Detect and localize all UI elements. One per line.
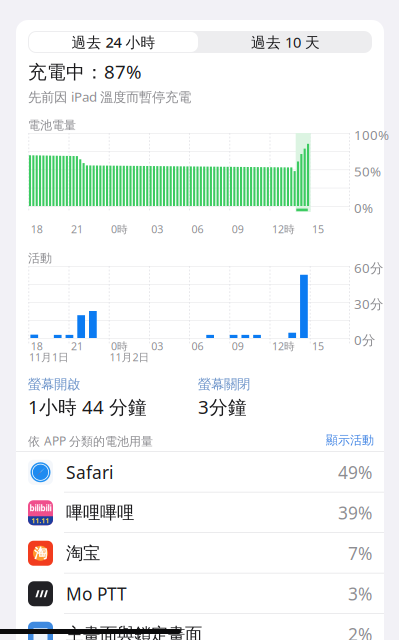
button[interactable]: bilibili — [16, 492, 384, 533]
button[interactable]: 過去 10 天 — [200, 31, 371, 53]
staticText: 0時 — [111, 339, 128, 353]
staticText: 39% — [338, 501, 372, 524]
button[interactable]: 淘 — [16, 533, 384, 573]
button[interactable]: 過去 24 小時 — [28, 31, 199, 53]
staticText: 淘宝 — [66, 543, 100, 564]
staticText: 09 — [232, 339, 244, 353]
staticText: 螢幕關閉 — [198, 376, 250, 392]
staticText: 0時 — [111, 222, 128, 236]
staticText: 7% — [348, 542, 372, 565]
staticText: 15 — [312, 222, 324, 236]
staticText: 30分 — [354, 295, 383, 313]
staticText: 依 APP 分類的電池用量 — [28, 433, 153, 449]
staticText: 50% — [354, 162, 381, 180]
staticText: 18 — [31, 339, 43, 353]
staticText: 3% — [348, 582, 372, 605]
staticText: 過去 24 小時 — [71, 32, 155, 52]
staticText: 49% — [338, 461, 372, 484]
staticText: 15 — [312, 339, 324, 353]
staticText: Mo PTT — [66, 582, 127, 605]
staticText: 11月1日 — [29, 350, 69, 364]
staticText: 1小時 44 分鐘 — [28, 394, 147, 419]
staticText: 100% — [354, 126, 389, 144]
staticText: 充電中：87% — [28, 59, 142, 84]
staticText: 嗶哩嗶哩 — [66, 502, 134, 523]
staticText: 21 — [71, 222, 83, 236]
staticText: 06 — [191, 222, 203, 236]
staticText: 18 — [31, 222, 43, 236]
staticText: 0% — [354, 199, 373, 217]
button[interactable]: 顯示活動 — [326, 433, 374, 448]
staticText: 顯示活動 — [326, 433, 374, 448]
button[interactable]: Mo PTT — [16, 573, 384, 614]
staticText: 螢幕開啟 — [28, 376, 80, 392]
staticText: 60分 — [354, 259, 383, 277]
staticText: Safari — [66, 461, 113, 484]
staticText: 主畫面與鎖定畫面 — [66, 624, 202, 640]
staticText: 過去 10 天 — [251, 32, 320, 52]
button[interactable]: 主畫面與鎖定畫面 — [16, 614, 384, 640]
staticText: 09 — [232, 222, 244, 236]
staticText: 活動 — [28, 251, 52, 266]
staticText: 0分 — [354, 331, 375, 349]
staticText: 03 — [151, 222, 163, 236]
staticText: 11月2日 — [109, 350, 149, 364]
staticText: 3分鐘 — [198, 394, 247, 419]
staticText: 淘 — [34, 545, 47, 561]
staticText: 21 — [71, 339, 83, 353]
staticText: bilibili — [29, 503, 51, 513]
staticText: 06 — [191, 339, 203, 353]
staticText: 先前因 iPad 溫度而暫停充電 — [28, 88, 191, 105]
staticText: 11.11 — [31, 516, 49, 525]
staticText: 12時 — [272, 222, 295, 236]
staticText: 12時 — [272, 339, 295, 353]
button[interactable]: Safari — [16, 452, 384, 492]
staticText: 2% — [348, 623, 372, 640]
staticText: 電池電量 — [28, 118, 76, 133]
staticText: 03 — [151, 339, 163, 353]
